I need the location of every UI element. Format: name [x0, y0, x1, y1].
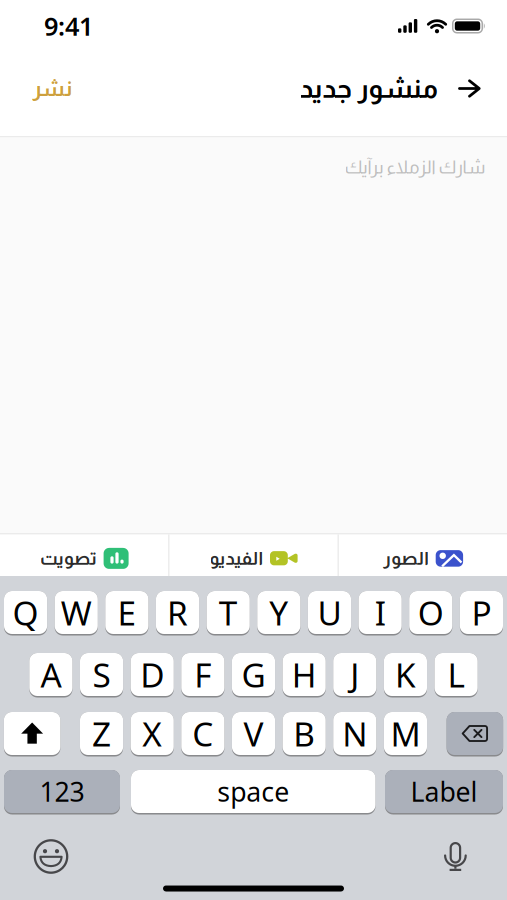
- button[interactable]: Video: [169, 534, 337, 576]
- button[interactable]: space: [131, 770, 375, 814]
- staticText: H: [292, 652, 317, 697]
- staticText: D: [140, 652, 164, 697]
- staticText: L: [448, 652, 465, 697]
- staticText: N: [342, 711, 367, 756]
- staticText: M: [390, 711, 420, 756]
- button[interactable]: Poll: [0, 534, 168, 576]
- button[interactable]: X: [131, 712, 174, 756]
- button[interactable]: E: [105, 591, 148, 635]
- staticText: E: [117, 590, 136, 635]
- button[interactable]: K: [384, 653, 427, 697]
- button[interactable]: C: [181, 712, 224, 756]
- button[interactable]: N: [333, 712, 376, 756]
- staticText: K: [395, 652, 416, 697]
- staticText: منشور جديد: [299, 74, 437, 103]
- staticText: Q: [13, 590, 39, 635]
- button[interactable]: O: [409, 591, 452, 635]
- staticText: J: [350, 652, 359, 697]
- button[interactable]: Delete: [447, 712, 503, 756]
- staticText: U: [317, 590, 341, 635]
- button[interactable]: 123: [4, 770, 120, 814]
- button[interactable]: L: [434, 653, 478, 697]
- staticText: C: [192, 711, 213, 756]
- staticText: F: [194, 652, 211, 697]
- button[interactable]: Q: [4, 591, 47, 635]
- staticText: Z: [92, 711, 111, 756]
- staticText: I: [375, 590, 386, 635]
- button[interactable]: Back: [437, 80, 507, 97]
- button[interactable]: D: [131, 653, 174, 697]
- staticText: T: [219, 590, 238, 635]
- button[interactable]: Label: [385, 770, 503, 814]
- button[interactable]: Emoji: [0, 839, 68, 873]
- button[interactable]: V: [232, 712, 275, 756]
- button[interactable]: P: [460, 591, 503, 635]
- button[interactable]: Dictation: [445, 842, 507, 871]
- staticText: تصويت: [40, 548, 97, 568]
- button[interactable]: I: [359, 591, 402, 635]
- button[interactable]: G: [232, 653, 275, 697]
- staticText: الفيديو: [209, 548, 263, 568]
- button[interactable]: B: [283, 712, 326, 756]
- staticText: نشر: [32, 77, 72, 100]
- button[interactable]: Y: [257, 591, 300, 635]
- staticText: Y: [269, 590, 288, 635]
- staticText: O: [418, 590, 444, 635]
- button[interactable]: S: [80, 653, 123, 697]
- button[interactable]: H: [283, 653, 326, 697]
- staticText: 9:41: [44, 9, 93, 43]
- staticText: P: [471, 590, 491, 635]
- staticText: B: [293, 711, 315, 756]
- staticText: X: [142, 711, 162, 756]
- button[interactable]: A: [29, 653, 72, 697]
- staticText: space: [217, 774, 289, 809]
- button[interactable]: نشر: [0, 77, 72, 100]
- staticText: S: [93, 652, 111, 697]
- button[interactable]: F: [181, 653, 224, 697]
- staticText: V: [243, 711, 263, 756]
- staticText: G: [241, 652, 265, 697]
- staticText: Label: [410, 774, 477, 809]
- staticText: الصور: [383, 548, 429, 568]
- staticText: W: [61, 590, 92, 635]
- button[interactable]: Photos: [339, 534, 507, 576]
- button[interactable]: J: [333, 653, 376, 697]
- button[interactable]: W: [55, 591, 98, 635]
- button[interactable]: R: [156, 591, 199, 635]
- staticText: A: [40, 652, 61, 697]
- button[interactable]: M: [384, 712, 427, 756]
- staticText: R: [167, 590, 188, 635]
- staticText: شارك الزملاء برآيك: [344, 156, 485, 177]
- button[interactable]: Z: [80, 712, 123, 756]
- button[interactable]: T: [207, 591, 250, 635]
- staticText: 123: [39, 774, 84, 809]
- button[interactable]: U: [308, 591, 351, 635]
- button[interactable]: Shift: [4, 712, 60, 756]
